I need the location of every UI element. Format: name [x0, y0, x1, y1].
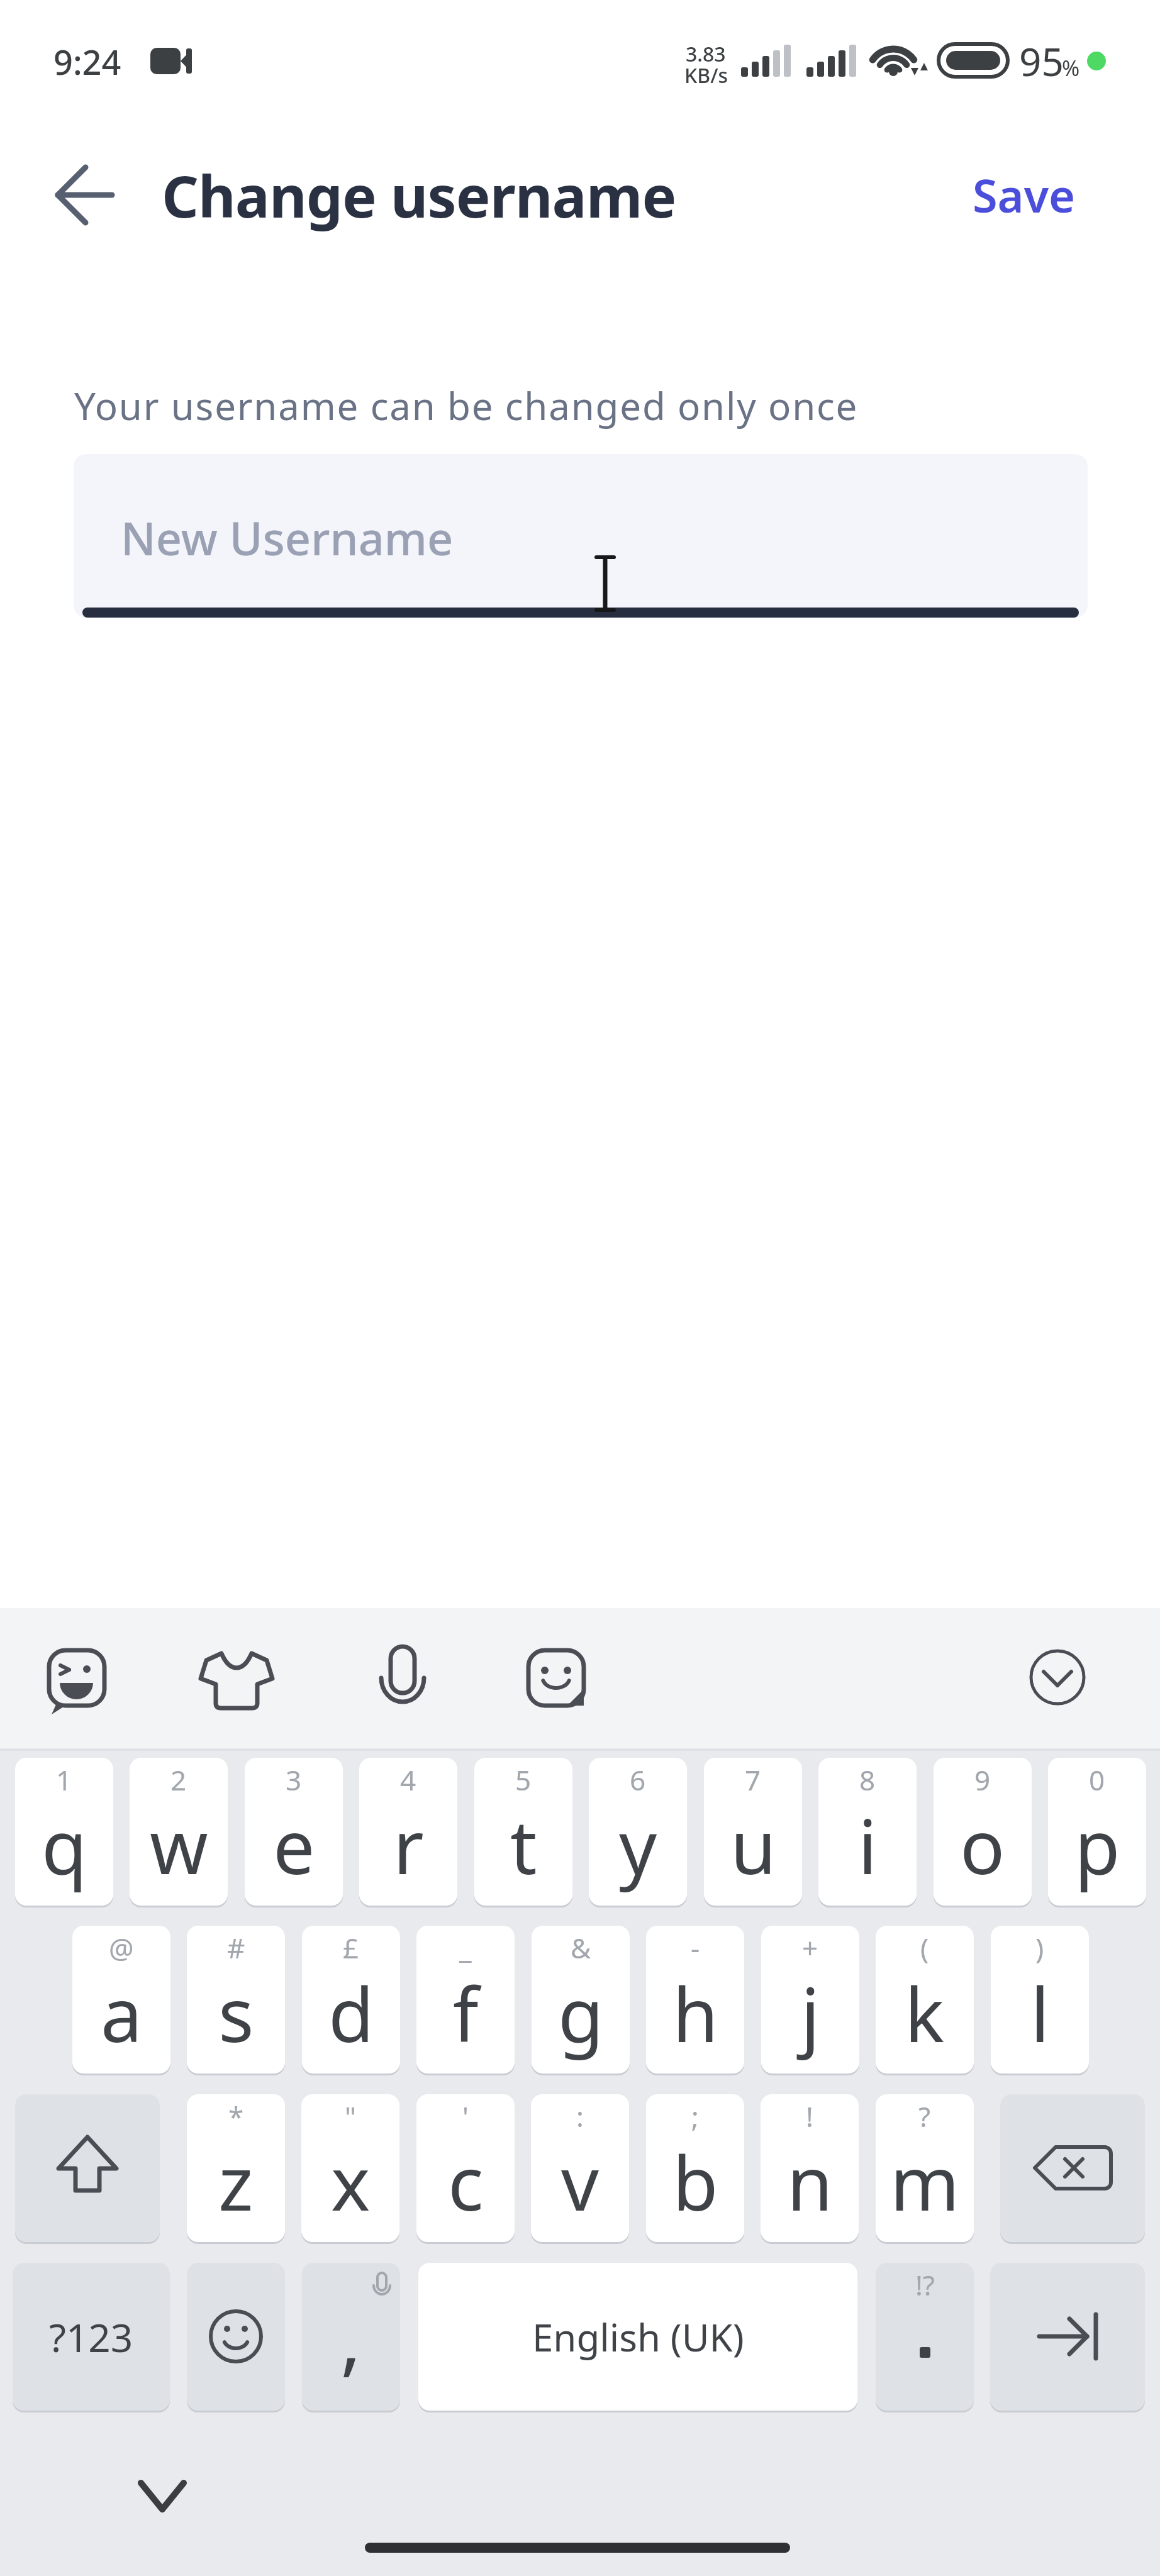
staticText: Save [973, 164, 1076, 226]
button[interactable]: English (UK) [418, 2263, 857, 2411]
staticText: Your username can be changed only once [74, 380, 859, 431]
staticText: + [802, 1929, 818, 1967]
button[interactable] [524, 1648, 584, 1707]
button[interactable] [1029, 1648, 1088, 1707]
staticText: * [228, 2097, 244, 2135]
staticText: ?123 [49, 2311, 133, 2363]
staticText: 1 [56, 1761, 72, 1799]
staticText: # [227, 1929, 245, 1967]
button[interactable]: + [761, 1926, 859, 2074]
staticText: ' [462, 2097, 469, 2135]
button[interactable] [377, 1645, 428, 1707]
staticText: ? [918, 2097, 931, 2135]
button[interactable]: 2 [130, 1758, 228, 1906]
staticText: 9 [974, 1761, 991, 1799]
staticText: f [453, 1963, 479, 2064]
staticText: g [558, 1963, 604, 2064]
button[interactable] [74, 454, 1088, 618]
button[interactable]: ? [876, 2094, 974, 2242]
button[interactable]: # [187, 1926, 285, 2074]
button[interactable]: _ [416, 1926, 515, 2074]
staticText: w [150, 1795, 208, 1896]
staticText: l [1030, 1963, 1050, 2064]
button[interactable]: 5 [474, 1758, 572, 1906]
staticText: b [672, 2131, 718, 2233]
staticText: k [905, 1963, 945, 2064]
staticText: v [561, 2131, 599, 2233]
button[interactable]: 8 [818, 1758, 917, 1906]
staticText: q [42, 1795, 87, 1896]
staticText: 95 [1019, 35, 1064, 87]
button[interactable] [187, 2263, 285, 2411]
button[interactable]: ' [416, 2094, 515, 2242]
staticText: u [730, 1795, 776, 1896]
button[interactable] [990, 2263, 1145, 2411]
staticText: 0 [1089, 1761, 1105, 1799]
staticText: h [672, 1963, 718, 2064]
staticText: 6 [630, 1761, 646, 1799]
staticText: KB/s [684, 62, 728, 89]
staticText: p [1074, 1795, 1120, 1896]
staticText: : [576, 2097, 584, 2135]
button[interactable]: 7 [704, 1758, 802, 1906]
staticText: % [1062, 53, 1080, 82]
button[interactable]: 3 [245, 1758, 343, 1906]
button[interactable]: 1 [15, 1758, 113, 1906]
button[interactable] [48, 1648, 108, 1707]
staticText: o [960, 1795, 1005, 1896]
button[interactable]: 6 [589, 1758, 687, 1906]
staticText: c [448, 2131, 484, 2233]
staticText: m [890, 2131, 960, 2233]
staticText: 3.83 [686, 40, 726, 68]
button[interactable]: 0 [1048, 1758, 1146, 1906]
staticText: New Username [121, 507, 454, 569]
button[interactable]: @ [72, 1926, 170, 2074]
staticText: , [340, 2284, 362, 2390]
button[interactable]: ! [761, 2094, 859, 2242]
staticText: " [345, 2097, 356, 2135]
button[interactable]: - [646, 1926, 744, 2074]
button[interactable] [15, 2094, 160, 2242]
staticText: 7 [745, 1761, 761, 1799]
staticText: ! [806, 2097, 813, 2135]
staticText: 4 [400, 1761, 416, 1799]
button[interactable]: " [301, 2094, 399, 2242]
button[interactable]: Save [956, 160, 1091, 230]
staticText: d [328, 1963, 374, 2064]
staticText: s [218, 1963, 254, 2064]
staticText: !? [915, 2266, 935, 2304]
staticText: English (UK) [532, 2311, 744, 2363]
staticText: ) [1035, 1929, 1044, 1967]
button[interactable]: £ [302, 1926, 400, 2074]
button[interactable]: , [302, 2263, 400, 2411]
button[interactable]: 4 [359, 1758, 457, 1906]
staticText: Change username [162, 156, 676, 235]
button[interactable]: & [532, 1926, 630, 2074]
button[interactable]: !? [876, 2263, 974, 2411]
staticText: x [331, 2131, 371, 2233]
staticText: £ [343, 1929, 359, 1967]
button[interactable]: 9 [934, 1758, 1032, 1906]
button[interactable]: * [187, 2094, 285, 2242]
staticText: & [571, 1929, 591, 1967]
staticText: 2 [170, 1761, 187, 1799]
button[interactable]: : [531, 2094, 629, 2242]
staticText: @ [109, 1929, 134, 1967]
button[interactable]: ) [991, 1926, 1089, 2074]
button[interactable]: ?123 [13, 2263, 170, 2411]
staticText: 5 [515, 1761, 532, 1799]
button[interactable] [203, 1648, 272, 1707]
staticText: 3 [286, 1761, 302, 1799]
staticText: a [101, 1963, 143, 2064]
staticText: 9:24 [53, 38, 121, 85]
button[interactable] [1000, 2094, 1145, 2242]
staticText: ; [691, 2097, 699, 2135]
button[interactable]: ; [646, 2094, 744, 2242]
staticText: y [619, 1795, 657, 1896]
staticText: r [393, 1795, 424, 1896]
staticText: n [787, 2131, 833, 2233]
button[interactable] [44, 165, 123, 228]
staticText: j [801, 1963, 820, 2064]
button[interactable]: ( [876, 1926, 974, 2074]
staticText: e [273, 1795, 315, 1896]
